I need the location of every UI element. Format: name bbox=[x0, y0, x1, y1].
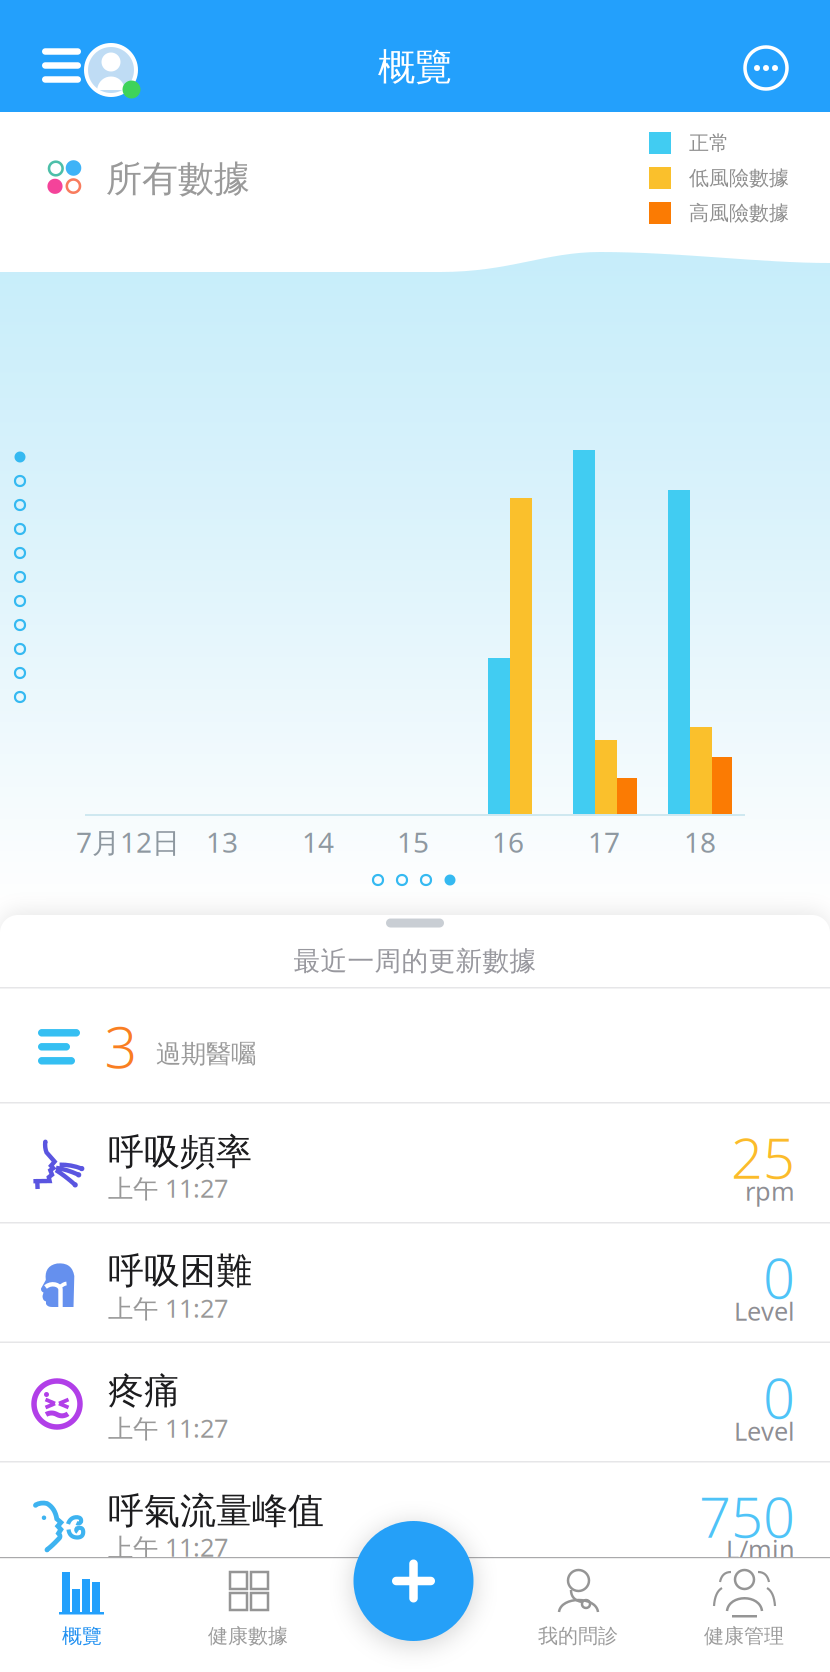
staticText: 疼痛 bbox=[108, 1369, 180, 1413]
staticText: 上午 11:27 bbox=[108, 1171, 228, 1205]
button[interactable]: Add bbox=[353, 1521, 473, 1641]
staticText: 7月12日 bbox=[76, 823, 180, 861]
staticText: 18 bbox=[684, 823, 716, 861]
staticText: 呼吸困難 bbox=[108, 1249, 252, 1293]
staticText: 最近一周的更新數據 bbox=[293, 945, 536, 977]
staticText: 呼氣流量峰值 bbox=[108, 1489, 324, 1533]
staticText: 14 bbox=[302, 823, 334, 861]
staticText: 0 bbox=[763, 1360, 795, 1434]
button[interactable]: 概覽 bbox=[0, 0, 830, 1672]
button[interactable]: 健康數據 bbox=[0, 0, 830, 1672]
staticText: 上午 11:27 bbox=[108, 1411, 228, 1445]
staticText: Level bbox=[734, 1294, 795, 1328]
staticText: 高風險數據 bbox=[689, 201, 789, 225]
staticText: rpm bbox=[745, 1174, 795, 1208]
staticText: 750 bbox=[699, 1479, 795, 1553]
staticText: 概覽 bbox=[378, 44, 452, 90]
staticText: 呼吸頻率 bbox=[108, 1130, 252, 1174]
button[interactable]: 疼痛 bbox=[0, 0, 830, 1672]
button[interactable]: 3 bbox=[0, 0, 830, 1672]
button[interactable]: 呼吸困難 bbox=[0, 0, 830, 1672]
staticText: 0 bbox=[763, 1240, 795, 1314]
button[interactable]: 呼氣流量峰值 bbox=[0, 0, 830, 1672]
button[interactable]: 呼吸頻率 bbox=[0, 0, 830, 1672]
button[interactable]: 健康管理 bbox=[0, 0, 830, 1672]
staticText: 25 bbox=[731, 1120, 795, 1194]
button[interactable]: 我的問診 bbox=[0, 0, 830, 1672]
staticText: 過期醫囑 bbox=[156, 1038, 256, 1069]
staticText: 正常 bbox=[689, 131, 729, 155]
staticText: L/min bbox=[726, 1532, 795, 1566]
staticText: 健康管理 bbox=[704, 1624, 784, 1648]
staticText: Level bbox=[734, 1414, 795, 1448]
staticText: 16 bbox=[492, 823, 524, 861]
button[interactable]: More bbox=[0, 0, 830, 1672]
staticText: 概覽 bbox=[62, 1624, 102, 1648]
staticText: 15 bbox=[397, 823, 429, 861]
staticText: 我的問診 bbox=[538, 1624, 618, 1648]
staticText: 所有數據 bbox=[106, 157, 250, 201]
staticText: 3 bbox=[104, 1008, 137, 1084]
button[interactable]: Menu bbox=[0, 0, 830, 1672]
staticText: 17 bbox=[588, 823, 620, 861]
staticText: 健康數據 bbox=[208, 1624, 288, 1648]
staticText: 13 bbox=[206, 823, 238, 861]
staticText: 上午 11:27 bbox=[108, 1530, 228, 1564]
staticText: 上午 11:27 bbox=[108, 1291, 228, 1325]
staticText: 低風險數據 bbox=[689, 166, 789, 190]
